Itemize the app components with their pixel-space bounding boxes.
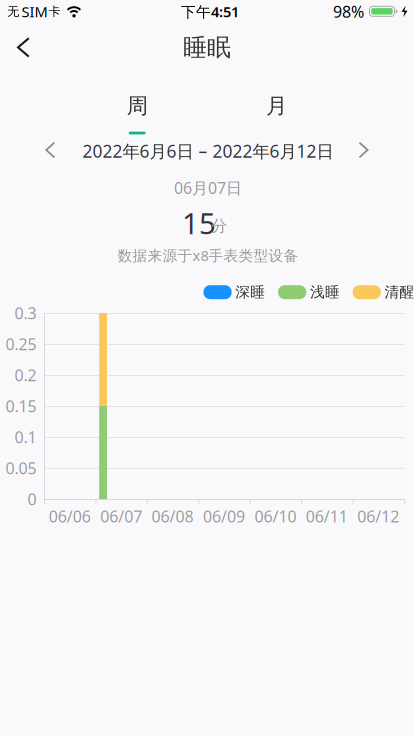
staticText: 06/07 [100,506,142,527]
staticText: 0.05 [5,457,36,479]
button[interactable]: 深睡 [203,283,265,301]
staticText: 下午4:51 [181,2,239,21]
staticText: 0.25 [5,333,36,355]
staticText: 浅睡 [310,283,340,301]
staticText: 0.3 [14,302,36,324]
staticText: 周 [127,93,148,119]
staticText: 2022年6月6日 – 2022年6月12日 [82,139,333,162]
staticText: 卡 [48,4,60,19]
staticText: 06/12 [357,506,399,527]
staticText: 0 [27,488,36,510]
button[interactable]: 上一周 [28,133,72,167]
staticText: 0.15 [5,395,36,417]
staticText: 06/10 [254,506,296,527]
button[interactable]: 清醒 [353,283,414,301]
staticText: SIM [21,2,47,21]
staticText: 0.2 [14,364,36,386]
staticText: 06月07日 [174,177,242,198]
button[interactable]: 返回 [1,25,45,69]
staticText: 06/09 [203,506,245,527]
staticText: 睡眠 [183,33,231,62]
staticText: 06/06 [49,506,91,527]
staticText: 06/11 [306,506,348,527]
staticText: 06/08 [152,506,194,527]
staticText: 深睡 [235,283,265,301]
staticText: 无 [7,4,19,19]
staticText: 月 [266,93,287,119]
button[interactable]: 下一周 [341,133,385,167]
staticText: 15 [182,203,216,242]
staticText: 98% [333,1,364,22]
button[interactable]: 周 [68,94,207,134]
staticText: 0.1 [14,426,36,448]
staticText: 数据来源于x8手表类型设备 [117,246,298,265]
staticText: 分 [211,216,227,236]
button[interactable]: 月 [207,94,346,134]
button[interactable]: 浅睡 [278,283,340,301]
staticText: 清醒 [384,283,414,301]
